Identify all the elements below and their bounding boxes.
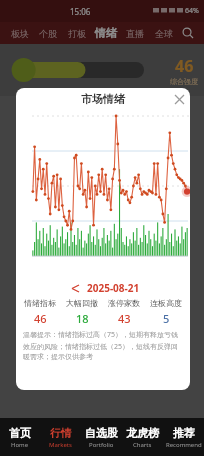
button[interactable]: 自选股	[81, 418, 122, 456]
button[interactable]: Close	[168, 88, 190, 110]
staticText: 涨停家数	[108, 298, 140, 308]
button[interactable]: 连板高度	[145, 298, 187, 326]
staticText: Portfolio	[89, 441, 114, 449]
staticText: 打板	[68, 28, 86, 39]
staticText: 情绪指标	[24, 298, 56, 308]
staticText: 个股	[39, 28, 57, 39]
staticText: Recommend	[166, 441, 202, 449]
staticText: 全球	[155, 28, 173, 39]
staticText: 46	[34, 311, 47, 326]
button[interactable]: 全球	[149, 22, 178, 44]
staticText: 连板高度	[150, 298, 182, 308]
staticText: 5	[163, 311, 170, 326]
button[interactable]: 情绪指标	[19, 298, 61, 326]
staticText: 2025-08-21	[87, 281, 140, 295]
staticText: Charts	[133, 441, 152, 449]
button[interactable]: 情绪	[91, 22, 120, 44]
staticText: 15:06	[70, 6, 91, 17]
button[interactable]: Search	[178, 22, 198, 44]
staticText: 情绪	[95, 26, 117, 40]
button[interactable]: 直播	[120, 22, 149, 44]
staticText: 行情	[50, 426, 72, 440]
staticText: 温馨提示：情绪指标过高（75），短期有释放亏钱效应的风险；情绪指标过低（25），…	[23, 330, 183, 361]
staticText: Home	[11, 441, 29, 449]
staticText: 综合强度	[170, 77, 198, 86]
staticText: 市场情绪	[81, 92, 125, 106]
staticText: 板块	[11, 28, 29, 39]
button[interactable]: 首页	[0, 418, 40, 456]
staticText: 推荐	[173, 426, 195, 440]
button[interactable]: 涨停家数	[103, 298, 145, 326]
button[interactable]: 板块	[6, 22, 34, 44]
button[interactable]: 个股	[34, 22, 62, 44]
button[interactable]: Previous day	[67, 280, 83, 296]
staticText: 直播	[126, 28, 144, 39]
staticText: 大幅回撤	[66, 298, 98, 308]
staticText: 自选股	[85, 426, 118, 440]
button[interactable]: 打板	[62, 22, 91, 44]
button[interactable]: 龙虎榜	[122, 418, 163, 456]
button[interactable]: 大幅回撤	[61, 298, 103, 326]
staticText: 46	[175, 55, 194, 77]
button[interactable]: 推荐	[163, 418, 204, 456]
staticText: Markets	[49, 441, 72, 449]
staticText: 龙虎榜	[126, 426, 159, 440]
staticText: 43	[118, 311, 131, 326]
staticText: 18	[76, 311, 89, 326]
staticText: 64%	[185, 6, 199, 16]
button[interactable]: 行情	[40, 418, 81, 456]
staticText: 首页	[9, 426, 31, 440]
